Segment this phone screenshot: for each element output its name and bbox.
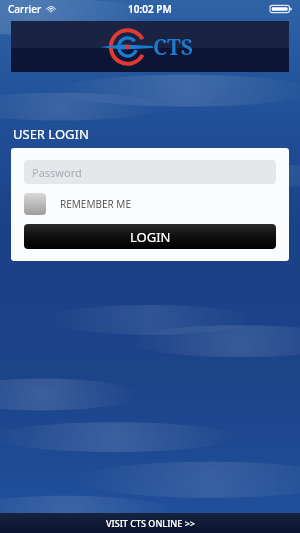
staticText: Carrier bbox=[8, 2, 42, 16]
staticText: LOGIN bbox=[130, 228, 171, 246]
button[interactable]: LOGIN bbox=[24, 224, 276, 249]
staticText: Password bbox=[32, 165, 82, 180]
button[interactable]: REMEMBER ME bbox=[24, 193, 276, 215]
staticText: VISIT CTS ONLINE >> bbox=[106, 517, 195, 529]
staticText: REMEMBER ME bbox=[60, 197, 131, 211]
staticText: CTS bbox=[153, 33, 193, 62]
staticText: USER LOGIN bbox=[13, 125, 89, 143]
button[interactable]: VISIT CTS ONLINE >> bbox=[0, 513, 300, 533]
button[interactable]: Password bbox=[24, 160, 276, 184]
staticText: 10:02 PM bbox=[128, 2, 172, 16]
